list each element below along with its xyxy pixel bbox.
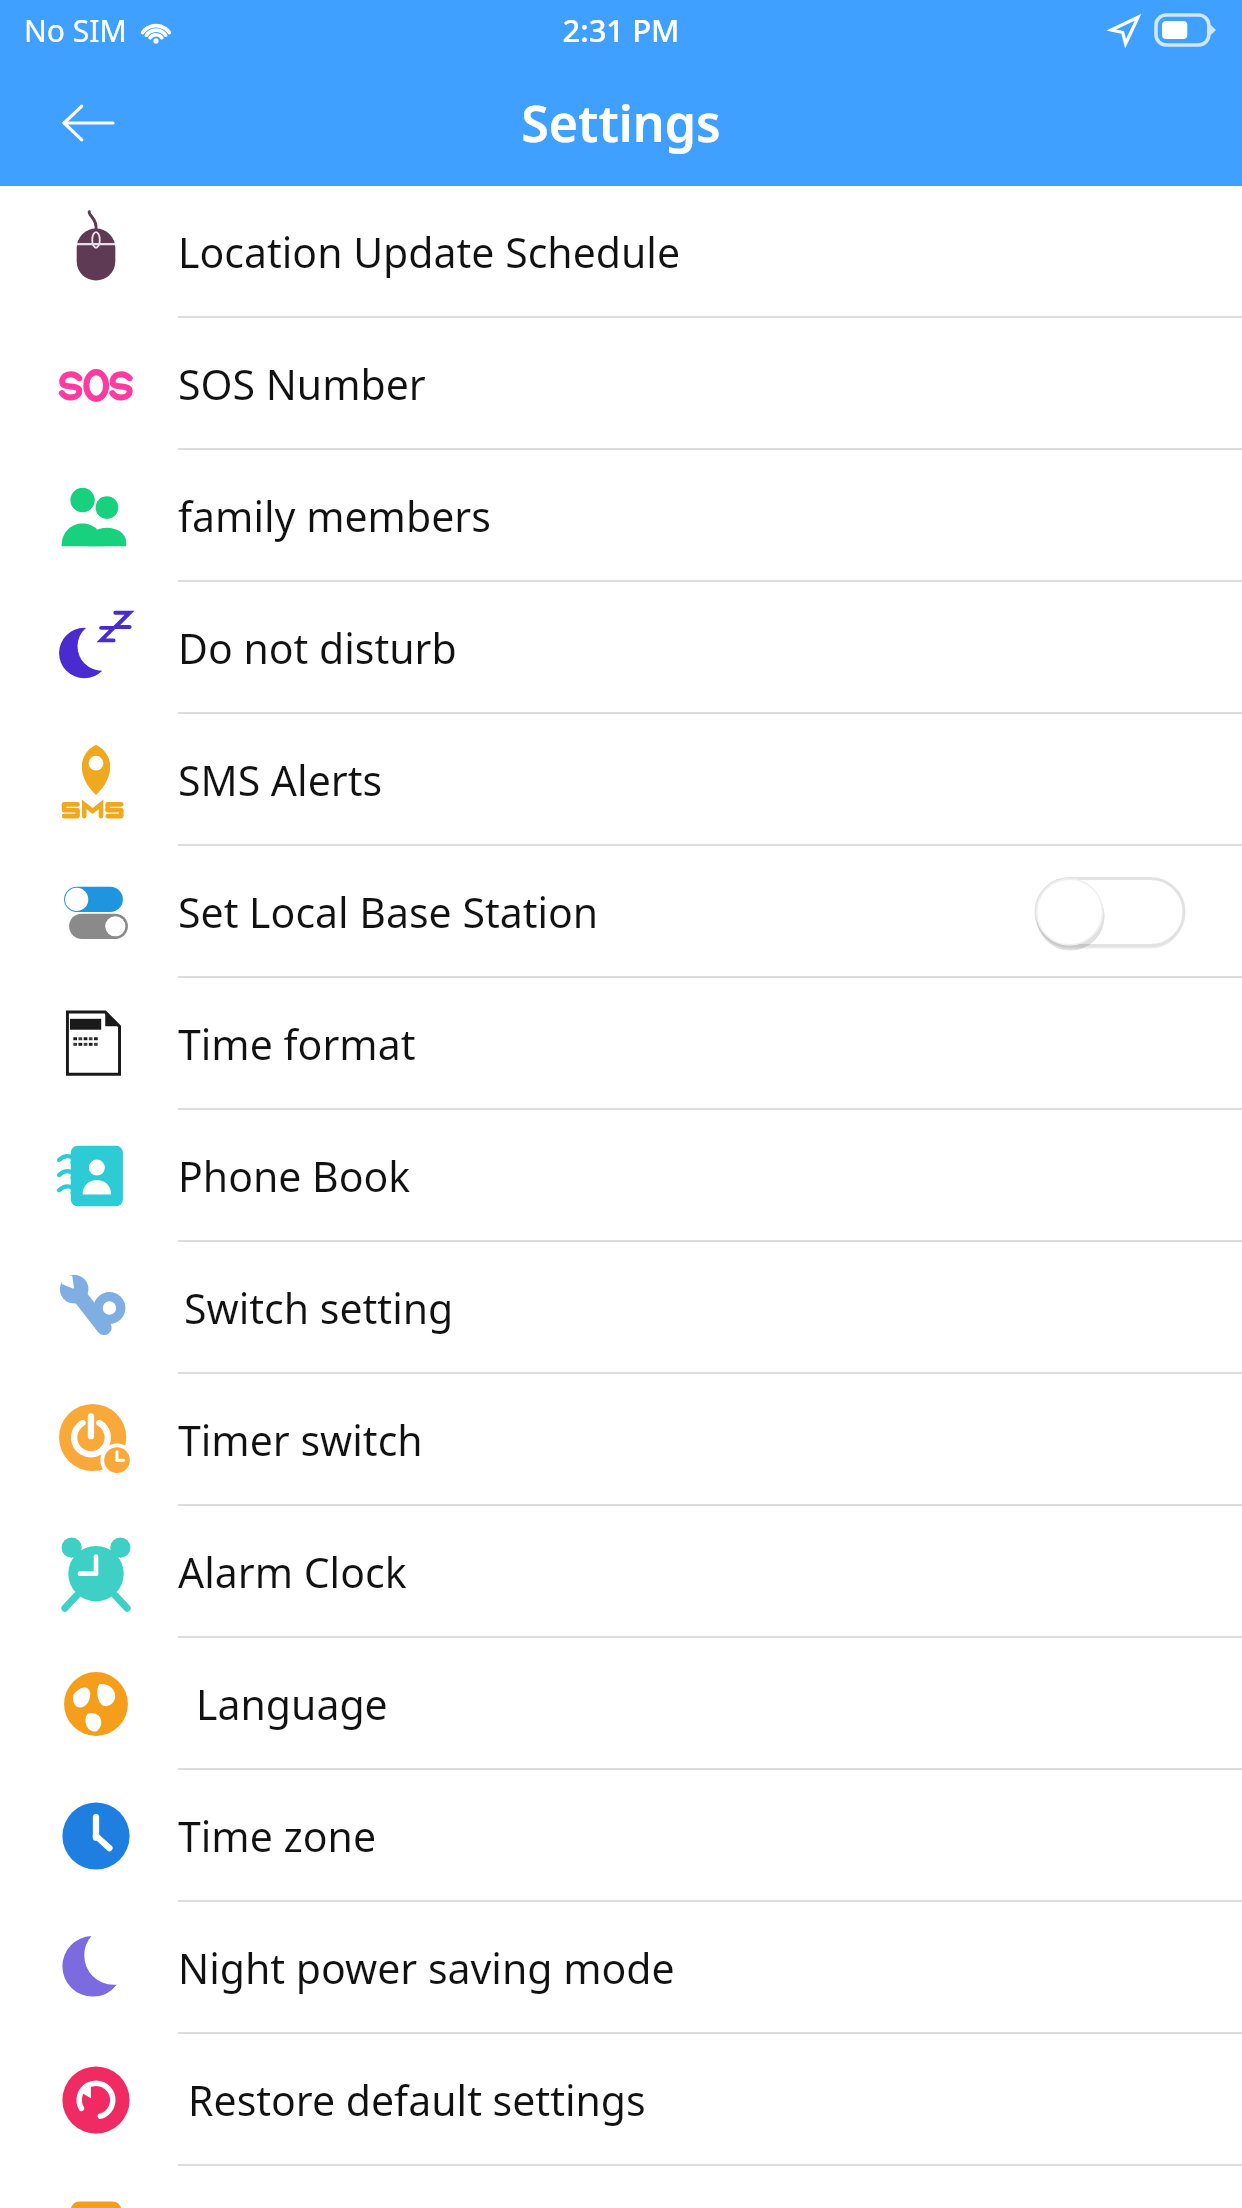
- button[interactable]: Language: [0, 1638, 1242, 1770]
- button[interactable]: Time zone: [0, 1770, 1242, 1902]
- button[interactable]: Switch setting: [0, 1242, 1242, 1374]
- staticText: SMS Alerts: [178, 752, 383, 808]
- button[interactable]: SMS Alerts: [0, 714, 1242, 846]
- staticText: Restore default settings: [188, 2072, 646, 2128]
- staticText: Location Update Schedule: [178, 224, 681, 280]
- button[interactable]: Time format: [0, 978, 1242, 1110]
- button[interactable]: Set Local Base Station: [0, 846, 1242, 978]
- button[interactable]: SOS Number: [0, 318, 1242, 450]
- button[interactable]: Timer switch: [0, 1374, 1242, 1506]
- button[interactable]: Restore default settings: [0, 2034, 1242, 2166]
- staticText: Set Local Base Station: [178, 884, 599, 940]
- button[interactable]: Set Local Base Station toggle: [1036, 869, 1184, 955]
- staticText: family members: [178, 488, 491, 544]
- staticText: Alarm Clock: [178, 1544, 407, 1600]
- button[interactable]: Night power saving mode: [0, 1902, 1242, 2034]
- staticText: Time zone: [178, 1808, 377, 1864]
- button[interactable]: Alarm Clock: [0, 1506, 1242, 1638]
- button[interactable]: family members: [0, 450, 1242, 582]
- staticText: Phone Book: [178, 1148, 411, 1204]
- button[interactable]: Back: [48, 84, 126, 162]
- staticText: 2:31 PM: [562, 9, 680, 51]
- staticText: Language: [196, 1676, 388, 1732]
- staticText: Night power saving mode: [178, 1940, 675, 1996]
- staticText: SOS Number: [178, 356, 426, 412]
- staticText: Timer switch: [178, 1412, 423, 1468]
- button[interactable]: Do not disturb: [0, 582, 1242, 714]
- staticText: Time format: [178, 1016, 416, 1072]
- staticText: Do not disturb: [178, 620, 457, 676]
- staticText: No SIM: [24, 10, 127, 51]
- staticText: Settings: [521, 89, 721, 157]
- staticText: Switch setting: [184, 1280, 454, 1336]
- button[interactable]: Location Update Schedule: [0, 186, 1242, 318]
- button[interactable]: Phone Book: [0, 1110, 1242, 1242]
